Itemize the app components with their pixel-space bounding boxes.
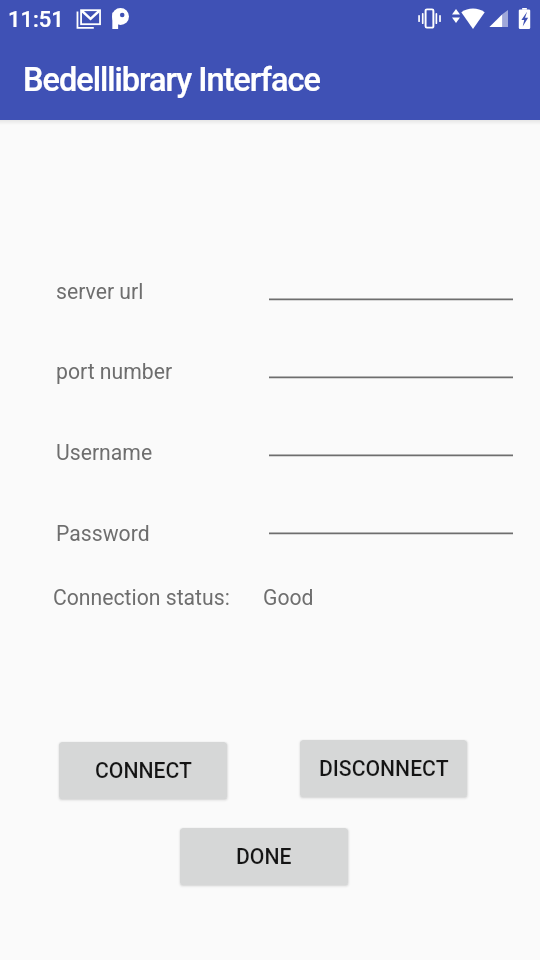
staticText: Connection status: (53, 585, 230, 610)
staticText: Bedelllibrary Interface (23, 61, 320, 99)
staticText: server url (56, 279, 144, 304)
staticText: Username (56, 440, 153, 465)
staticText: DONE (236, 844, 292, 869)
button[interactable]: Username (269, 415, 513, 457)
staticText: CONNECT (95, 758, 192, 783)
staticText: 11:51 (8, 7, 64, 33)
button[interactable]: port number (269, 337, 513, 379)
staticText: Password (56, 521, 150, 546)
button[interactable]: DONE (180, 828, 348, 885)
button[interactable]: server url (269, 259, 513, 301)
button[interactable]: DISCONNECT (300, 740, 467, 797)
button[interactable]: CONNECT (59, 742, 227, 799)
staticText: Good (263, 585, 314, 610)
staticText: DISCONNECT (319, 756, 449, 781)
staticText: port number (56, 359, 173, 384)
button[interactable]: Password (269, 493, 513, 535)
